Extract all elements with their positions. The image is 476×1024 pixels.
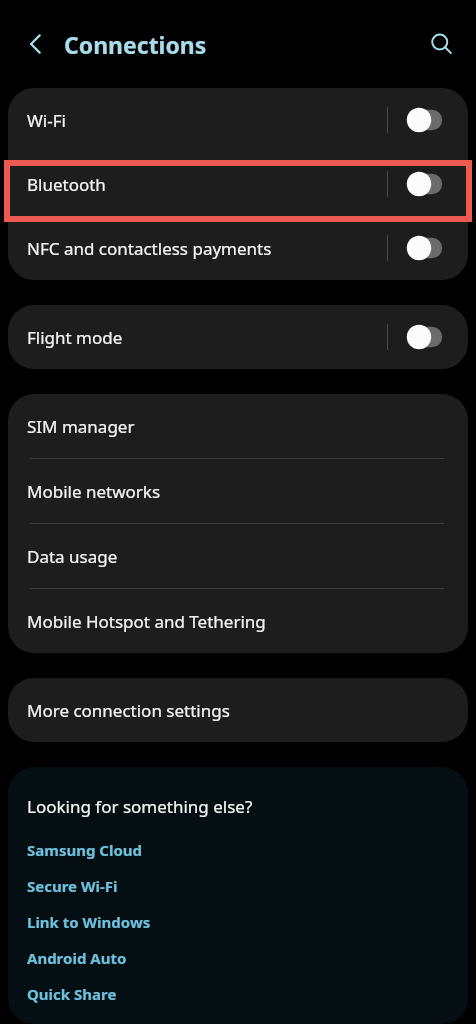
button[interactable]: Search <box>418 21 464 67</box>
staticText: Secure Wi-Fi <box>27 876 118 896</box>
button[interactable]: Bluetooth off <box>406 171 448 197</box>
button[interactable]: Bluetooth <box>8 152 468 216</box>
button[interactable]: More connection settings <box>8 678 468 742</box>
staticText: Looking for something else? <box>27 795 253 818</box>
staticText: Mobile networks <box>27 480 161 503</box>
button[interactable]: Quick Share <box>8 976 468 1012</box>
button[interactable]: Flight mode <box>8 305 468 369</box>
button[interactable]: Data usage <box>8 524 468 588</box>
button[interactable]: Navigate up <box>13 21 59 67</box>
button[interactable]: Link to Windows <box>8 904 468 940</box>
staticText: Mobile Hotspot and Tethering <box>27 610 266 633</box>
button[interactable]: Secure Wi-Fi <box>8 868 468 904</box>
button[interactable]: Wi-Fi off <box>406 107 448 133</box>
staticText: Android Auto <box>27 948 127 968</box>
staticText: Quick Share <box>27 984 117 1004</box>
staticText: More connection settings <box>27 699 230 722</box>
staticText: Wi-Fi <box>27 109 379 132</box>
button[interactable]: Mobile networks <box>8 459 468 523</box>
button[interactable]: SIM manager <box>8 394 468 458</box>
button[interactable]: Android Auto <box>8 940 468 976</box>
staticText: Flight mode <box>27 326 379 349</box>
staticText: Samsung Cloud <box>27 840 142 860</box>
staticText: Bluetooth <box>27 173 379 196</box>
staticText: Data usage <box>27 545 118 568</box>
staticText: Connections <box>64 29 207 60</box>
button[interactable]: Mobile Hotspot and Tethering <box>8 589 468 653</box>
button[interactable]: Wi-Fi <box>8 88 468 152</box>
button[interactable]: Samsung Cloud <box>8 832 468 868</box>
staticText: NFC and contactless payments <box>27 237 379 260</box>
button[interactable]: Flight mode off <box>406 324 448 350</box>
staticText: Link to Windows <box>27 912 151 932</box>
staticText: SIM manager <box>27 415 135 438</box>
button[interactable]: NFC and contactless payments <box>8 216 468 280</box>
button[interactable]: NFC and contactless payments off <box>406 235 448 261</box>
